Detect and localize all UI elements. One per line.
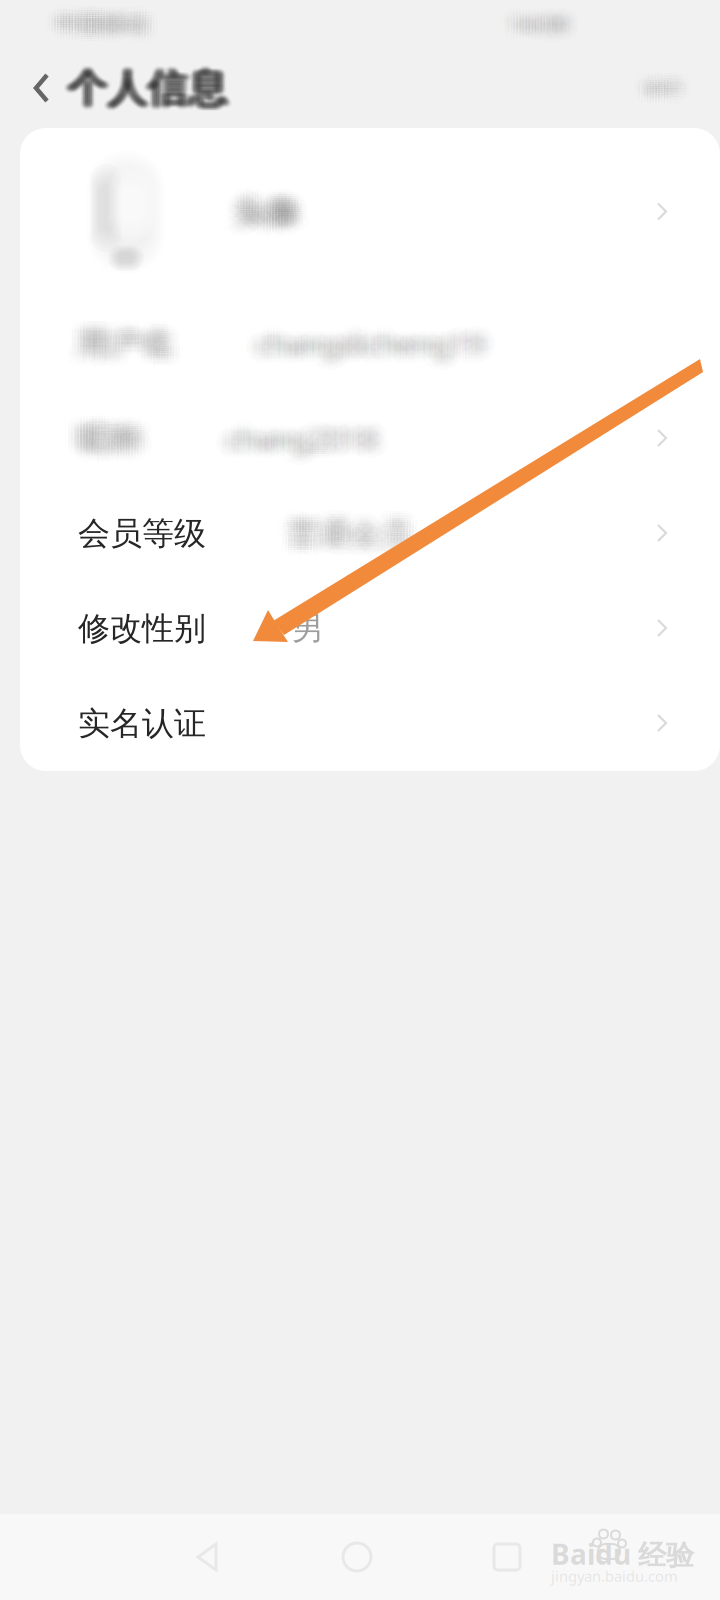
staticText: 用户名: [66, 318, 162, 357]
staticText: 头像: [242, 203, 304, 241]
staticText: chang2018: [214, 417, 366, 456]
staticText: 普通会员: [285, 521, 409, 559]
staticText: 头像: [230, 187, 292, 225]
staticText: 头像: [233, 183, 295, 220]
staticText: 14:08: [510, 15, 568, 45]
staticText: 头像: [236, 197, 298, 235]
staticText: 普通会员: [288, 504, 412, 542]
staticText: 用户名: [89, 326, 185, 365]
staticText: 14:08: [519, 0, 577, 29]
staticText: 昵称: [75, 408, 139, 448]
staticText: 头像: [250, 187, 312, 225]
staticText: changdicheng19: [267, 318, 496, 357]
staticText: changdicheng19: [267, 320, 496, 359]
staticText: 14:08: [507, 19, 565, 49]
staticText: 保存: [632, 66, 670, 89]
staticText: 普通会员: [276, 523, 400, 561]
button[interactable]: 用户名: [20, 296, 720, 391]
staticText: 中国移动: [44, 2, 136, 30]
staticText: 用户名: [66, 313, 162, 353]
staticText: 中国移动: [50, 12, 142, 40]
staticText: 中国移动: [44, 6, 136, 34]
button[interactable]: 返回: [0, 50, 68, 126]
staticText: 14:08: [519, 15, 577, 45]
staticText: 普通会员: [276, 508, 400, 546]
staticText: 头像: [250, 195, 312, 233]
staticText: 14:08: [513, 15, 571, 45]
staticText: changdicheng19: [265, 328, 494, 367]
staticText: 中国移动: [62, 2, 154, 30]
staticText: 个人信息: [63, 63, 223, 112]
staticText: 修改性别: [78, 609, 206, 648]
staticText: 个人信息: [70, 60, 230, 109]
staticText: 用户名: [89, 313, 185, 353]
staticText: 头像: [239, 183, 301, 220]
staticText: 个人信息: [74, 66, 234, 115]
staticText: 用户名: [78, 322, 174, 361]
staticText: 普通会员: [297, 519, 421, 556]
staticText: 保存: [644, 83, 682, 106]
button[interactable]: 实名认证: [20, 676, 720, 771]
staticText: 头像: [239, 185, 301, 223]
staticText: 中国移动: [62, 10, 154, 38]
staticText: 14:08: [504, 7, 562, 37]
staticText: 昵称: [69, 427, 133, 466]
staticText: 保存: [635, 85, 673, 108]
staticText: chang2018: [212, 413, 364, 452]
staticText: chang2018: [223, 413, 375, 452]
staticText: 14:08: [521, 17, 579, 47]
button[interactable]: 昵称: [20, 391, 720, 486]
staticText: changdicheng19: [267, 326, 496, 365]
staticText: 中国移动: [65, 18, 157, 46]
staticText: 保存: [632, 81, 670, 104]
staticText: changdicheng19: [247, 334, 476, 373]
staticText: 个人信息: [67, 59, 227, 108]
staticText: chang2018: [229, 421, 381, 460]
staticText: 14:08: [513, 13, 571, 43]
staticText: changdicheng19: [253, 332, 482, 371]
staticText: 用户名: [64, 318, 160, 357]
staticText: 头像: [247, 193, 309, 231]
staticText: 头像: [224, 187, 286, 225]
staticText: 普通会员: [274, 523, 398, 561]
staticText: 中国移动: [44, 12, 136, 40]
staticText: 用户名: [78, 326, 174, 365]
button[interactable]: 更多: [644, 50, 720, 126]
button[interactable]: 最近任务: [432, 1518, 582, 1596]
staticText: chang2018: [214, 409, 366, 448]
staticText: 普通会员: [288, 519, 412, 556]
staticText: chang2018: [235, 421, 387, 460]
staticText: changdicheng19: [242, 332, 471, 371]
staticText: 中国移动: [65, 12, 157, 40]
staticText: 头像: [233, 185, 295, 223]
staticText: 昵称: [87, 417, 151, 456]
staticText: 个人信息: [66, 60, 226, 109]
staticText: 用户名: [72, 313, 168, 353]
staticText: chang2018: [212, 427, 364, 466]
staticText: 保存: [655, 66, 693, 89]
staticText: 14:08: [496, 15, 554, 45]
staticText: 普通会员: [299, 525, 423, 563]
staticText: 保存: [630, 70, 668, 93]
staticText: chang2018: [229, 413, 381, 452]
staticText: 昵称: [84, 427, 148, 466]
staticText: 个人信息: [63, 61, 223, 110]
button[interactable]: 头像: [20, 128, 720, 296]
staticText: 用户名: [72, 328, 168, 367]
staticText: 普通会员: [274, 515, 398, 552]
button[interactable]: 会员等级: [20, 486, 720, 581]
staticText: 昵称: [92, 419, 156, 458]
staticText: changdicheng19: [244, 328, 473, 367]
staticText: 中国移动: [62, 4, 154, 32]
staticText: 中国移动: [53, 4, 145, 32]
staticText: 头像: [245, 199, 307, 237]
staticText: 保存: [638, 72, 676, 95]
staticText: 用户名: [66, 332, 162, 371]
button[interactable]: 修改性别: [20, 581, 720, 676]
staticText: 普通会员: [276, 519, 400, 556]
staticText: 个人信息: [66, 64, 226, 113]
staticText: 普通会员: [282, 504, 406, 542]
staticText: 中国移动: [50, 4, 142, 32]
